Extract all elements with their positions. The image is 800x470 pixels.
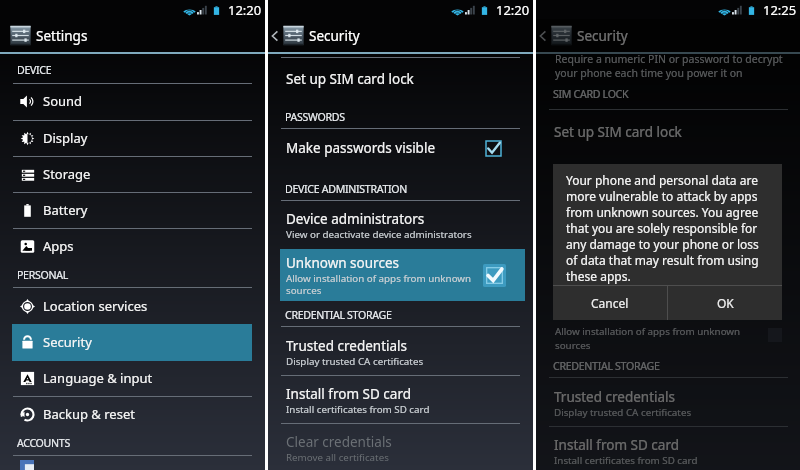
staticText: ACCOUNTS — [17, 436, 70, 450]
staticText: Location services — [43, 297, 148, 315]
staticText: Install certificates from SD card — [286, 403, 430, 416]
staticText: Require a numeric PIN or password to dec… — [555, 52, 783, 80]
staticText: Trusted credentials — [286, 337, 408, 355]
staticText: Backup & reset — [43, 405, 135, 423]
staticText: CREDENTIAL STORAGE — [285, 308, 392, 322]
staticText: Settings — [36, 27, 88, 45]
staticText: Set up SIM card lock — [286, 70, 414, 88]
staticText: Clear credentials — [286, 433, 392, 451]
button[interactable]: Set up SIM card lock — [548, 111, 793, 153]
button[interactable]: Device administrators — [280, 203, 525, 247]
staticText: 12:20 — [228, 1, 262, 19]
staticText: Unknown sources — [286, 254, 399, 272]
button[interactable]: Trusted credentials — [548, 381, 793, 425]
staticText: Device administrators — [286, 210, 425, 228]
staticText: Your phone and personal data are more vu… — [566, 172, 769, 284]
staticText: Security — [309, 27, 360, 45]
button[interactable]: Settings — [0, 19, 265, 52]
button[interactable]: Install from SD card — [548, 429, 793, 470]
button[interactable]: OK — [668, 286, 782, 320]
staticText: DEVICE — [17, 63, 52, 77]
staticText: PERSONAL — [17, 268, 68, 282]
button[interactable]: Install from SD card — [280, 378, 525, 422]
staticText: View or deactivate device administrators — [286, 228, 472, 241]
staticText: Remove all certificates — [286, 451, 389, 464]
staticText: Storage — [43, 165, 91, 183]
staticText: 12:25 — [763, 1, 797, 19]
staticText: Apps — [43, 237, 74, 255]
staticText: Make passwords visible — [286, 139, 436, 157]
staticText: Allow installation of apps from unknown … — [286, 272, 483, 297]
staticText: Battery — [43, 201, 88, 219]
staticText: Install from SD card — [554, 436, 679, 454]
button[interactable]: Clear credentials — [280, 426, 525, 470]
staticText: Set up SIM card lock — [554, 123, 682, 141]
staticText: SIM CARD LOCK — [553, 87, 629, 101]
staticText: CREDENTIAL STORAGE — [553, 359, 660, 373]
staticText: Cancel — [591, 295, 629, 311]
staticText: Display trusted CA certificates — [286, 355, 424, 368]
button[interactable]: Location services — [12, 288, 255, 324]
button[interactable]: Battery — [12, 192, 255, 228]
staticText: Security — [43, 333, 92, 351]
staticText: OK — [717, 295, 734, 311]
button[interactable]: Apps — [12, 228, 255, 264]
button[interactable]: Storage — [12, 156, 255, 192]
staticText: Display trusted CA certificates — [554, 406, 692, 419]
staticText: Install certificates from SD card — [554, 454, 698, 467]
button[interactable]: Language & input — [12, 360, 255, 396]
button[interactable]: Back — [268, 19, 533, 52]
button[interactable]: Set up SIM card lock — [280, 57, 525, 100]
button[interactable]: Display — [12, 120, 255, 156]
button[interactable]: Trusted credentials — [280, 330, 525, 374]
staticText: Language & input — [43, 369, 153, 387]
staticText: Allow installation of apps from unknown … — [555, 325, 741, 352]
staticText: 12:20 — [496, 1, 530, 19]
button[interactable]: Unknown sources — [280, 249, 525, 301]
staticText: Trusted credentials — [554, 388, 676, 406]
button[interactable]: Sound — [12, 83, 255, 119]
button[interactable]: Security — [12, 324, 255, 360]
button[interactable]: Make passwords visible — [280, 128, 525, 168]
staticText: Install from SD card — [286, 385, 411, 403]
staticText: Security — [577, 27, 628, 45]
button[interactable]: Backup & reset — [12, 396, 255, 432]
staticText: DEVICE ADMINISTRATION — [285, 182, 408, 196]
button[interactable]: Back — [536, 19, 800, 52]
button[interactable]: Cancel — [553, 286, 667, 320]
staticText: Display — [43, 129, 88, 147]
staticText: PASSWORDS — [285, 110, 345, 124]
staticText: Sound — [43, 92, 83, 110]
